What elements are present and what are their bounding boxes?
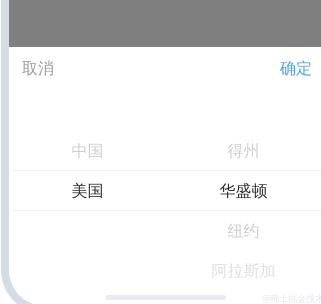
button[interactable]: 纽约 <box>166 211 321 251</box>
staticText: 阿拉斯加 <box>211 261 275 281</box>
staticText: 纽约 <box>227 221 259 241</box>
button[interactable]: 确定 <box>242 45 312 92</box>
button[interactable]: 中国 <box>9 131 166 171</box>
staticText: 华盛顿 <box>219 181 267 201</box>
button[interactable] <box>9 251 166 291</box>
staticText: 美国 <box>71 181 103 201</box>
staticText: 中国 <box>71 141 103 161</box>
button[interactable]: 得州 <box>166 131 321 171</box>
staticText: 得州 <box>227 141 259 161</box>
button[interactable]: 取消 <box>22 45 92 92</box>
staticText: @稀土掘金技术社区 <box>262 292 321 304</box>
button[interactable]: 美国 <box>9 171 166 211</box>
staticText: 确定 <box>280 59 312 78</box>
button[interactable]: 华盛顿 <box>166 171 321 211</box>
staticText: 取消 <box>22 59 54 78</box>
button[interactable]: 阿拉斯加 <box>166 251 321 291</box>
